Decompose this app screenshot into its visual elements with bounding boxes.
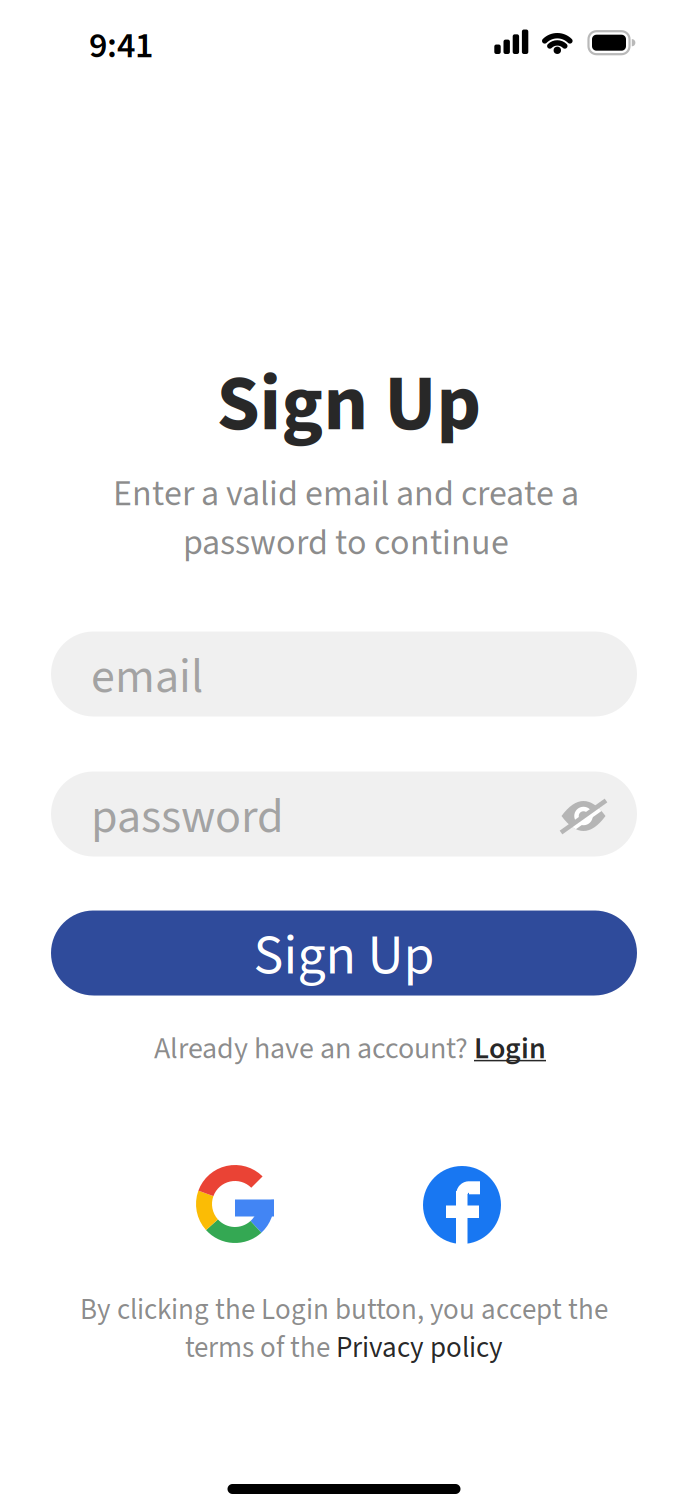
button[interactable]: Login — [474, 1028, 546, 1070]
staticText: terms of the — [185, 1328, 336, 1368]
button[interactable] — [555, 793, 611, 839]
staticText: password to continue — [183, 518, 509, 568]
button[interactable]: password — [51, 771, 637, 856]
staticText: By clicking the Login button, you accept… — [80, 1290, 608, 1330]
button[interactable] — [196, 1165, 274, 1243]
button[interactable]: Privacy policy — [336, 1328, 503, 1368]
staticText: Privacy policy — [336, 1328, 503, 1368]
staticText: Already have an account? — [154, 1028, 474, 1070]
staticText: Sign Up — [253, 917, 434, 995]
staticText: email — [91, 644, 203, 710]
staticText: 9:41 — [89, 21, 153, 71]
button[interactable]: Sign Up — [51, 910, 637, 995]
staticText: password — [91, 784, 284, 850]
button[interactable] — [423, 1166, 501, 1244]
button[interactable]: email — [51, 631, 637, 716]
staticText: Sign Up — [216, 351, 481, 459]
staticText: Enter a valid email and create a — [113, 469, 579, 519]
staticText: Login — [474, 1028, 546, 1070]
